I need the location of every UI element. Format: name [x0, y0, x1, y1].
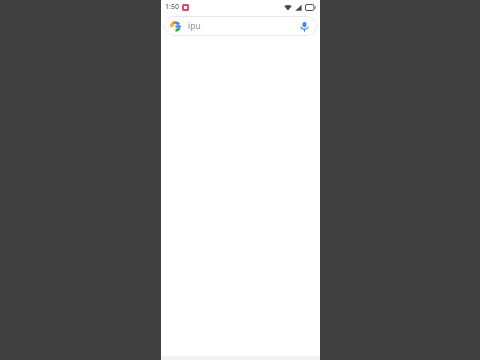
- button[interactable]: ipu: [164, 16, 317, 36]
- staticText: ipu: [188, 20, 201, 32]
- staticText: 1:50: [165, 2, 179, 12]
- button[interactable]: Voice search: [298, 20, 311, 33]
